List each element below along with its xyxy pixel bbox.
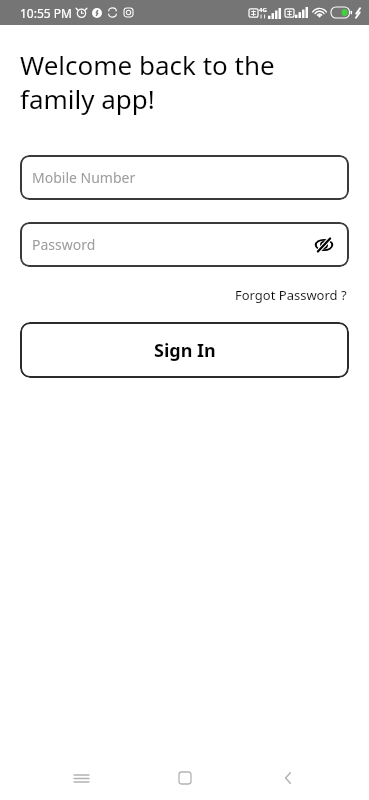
button[interactable]: Forgot Password ? — [233, 283, 349, 307]
button[interactable]: Home — [163, 756, 207, 800]
staticText: Password — [32, 235, 311, 254]
button[interactable]: Show password — [311, 232, 337, 258]
staticText: Welcome back to the family app! — [20, 47, 349, 117]
staticText: Mobile Number — [32, 168, 337, 187]
button[interactable]: Back — [266, 756, 310, 800]
button[interactable]: Recent apps — [59, 756, 103, 800]
staticText: Sign In — [154, 338, 216, 363]
button[interactable]: Sign In — [20, 322, 349, 378]
button[interactable]: Password — [20, 222, 349, 267]
staticText: 10:55 PM — [20, 5, 72, 21]
staticText: 4G — [259, 6, 267, 14]
button[interactable]: Mobile Number — [20, 155, 349, 200]
staticText: Forgot Password ? — [235, 286, 347, 304]
